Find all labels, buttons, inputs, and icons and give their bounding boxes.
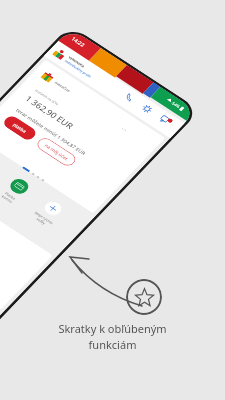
button[interactable]: Favourite	[126, 279, 162, 315]
button[interactable]: 4 342,00 EUR	[0, 172, 60, 315]
staticText: Moje rýchle voľby	[30, 210, 55, 229]
staticText: Platba kartou	[0, 190, 17, 204]
button[interactable]: Messages	[156, 113, 175, 129]
staticText: platba	[11, 122, 28, 134]
staticText: Skratky k obľúbeným funkciám	[58, 321, 167, 352]
staticText: 14:22	[69, 35, 87, 48]
staticText: individuálny profil	[62, 58, 93, 79]
button[interactable]: Settings	[137, 100, 157, 117]
staticText: 1 362,90 EUR	[20, 93, 79, 132]
button[interactable]: Add shortcut	[26, 193, 72, 232]
button[interactable]: platba	[0, 113, 40, 143]
button[interactable]: na môj účet	[32, 135, 81, 169]
staticText: 54%	[170, 100, 182, 109]
staticText: VERONIKA	[66, 55, 87, 69]
staticText: na môj účet	[42, 142, 71, 161]
button[interactable]: Call	[120, 89, 139, 106]
staticText: • • •	[121, 127, 128, 132]
staticText: zostatok na účte	[33, 88, 61, 106]
button[interactable]: mesačne	[0, 53, 172, 220]
button[interactable]: Platba kartou	[0, 171, 38, 210]
staticText: teraz môžete minúť 1 304,87 EUR	[11, 107, 91, 157]
button[interactable]: VERONIKA	[46, 42, 102, 84]
other: Platba kartou	[6, 175, 33, 198]
staticText: mesačne	[53, 80, 72, 94]
other: Add shortcut	[40, 197, 66, 220]
